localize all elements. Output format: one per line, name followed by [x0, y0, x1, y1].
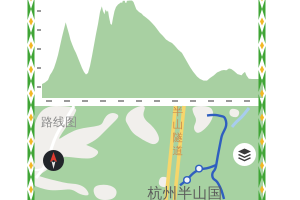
staticText: 隧	[172, 131, 183, 144]
button[interactable]: Map layers	[0, 0, 300, 200]
staticText: 半	[172, 105, 183, 118]
staticText: 杭州半山国	[147, 184, 222, 200]
staticText: 道	[172, 144, 183, 157]
staticText: 路线图	[41, 115, 77, 129]
staticText: 山	[172, 118, 183, 131]
